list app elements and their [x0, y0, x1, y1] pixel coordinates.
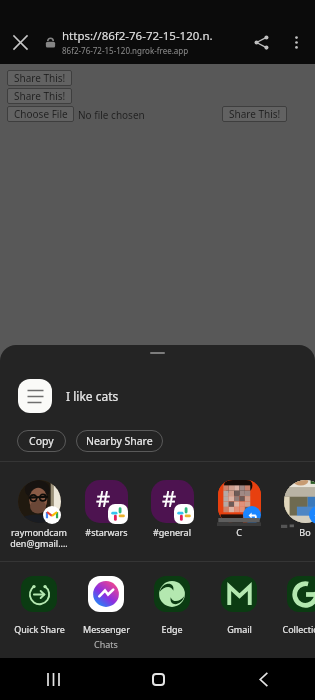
button[interactable]: # [140, 474, 204, 560]
button[interactable]: Bo [273, 474, 315, 560]
button[interactable]: Share This! [222, 106, 287, 122]
staticText: Quick Share [14, 623, 65, 635]
staticText: #starwars [85, 526, 128, 538]
button[interactable]: Choose File [7, 106, 74, 122]
staticText: Collections [282, 623, 315, 635]
staticText: Share This! [14, 71, 66, 85]
button[interactable]: Collections [273, 571, 315, 651]
button[interactable]: Gmail [207, 571, 271, 651]
staticText: No file chosen [78, 108, 145, 122]
button[interactable]: C [207, 474, 271, 560]
staticText: https://86f2-76-72-15-120.n… [62, 28, 212, 44]
staticText: Choose File [14, 107, 68, 121]
button[interactable]: Nearby Share [76, 430, 163, 452]
button[interactable]: Share This! [7, 88, 72, 104]
staticText: raymondcam den@gmail.... [10, 526, 68, 549]
staticText: Share This! [229, 107, 281, 121]
button[interactable]: Messenger [74, 571, 138, 651]
button[interactable]: Back [245, 661, 281, 697]
staticText: # [96, 483, 111, 513]
button[interactable]: More options [280, 26, 312, 58]
staticText: C [236, 526, 242, 538]
staticText: 86f2-76-72-15-120.ngrok-free.app [62, 45, 189, 56]
staticText: Edge [161, 623, 183, 635]
staticText: Copy [29, 434, 54, 448]
staticText: Messenger [83, 623, 130, 635]
button[interactable]: Share This! [7, 70, 72, 86]
staticText: Chats [94, 638, 118, 650]
button[interactable]: Recents [35, 661, 71, 697]
staticText: I like cats [66, 388, 119, 404]
button[interactable]: Close [4, 26, 36, 58]
button[interactable]: Edge [140, 571, 204, 651]
staticText: Gmail [227, 623, 252, 635]
button[interactable]: # [74, 474, 138, 560]
staticText: #general [153, 526, 191, 538]
button[interactable]: raymondcam den@gmail.... [7, 474, 71, 560]
button[interactable]: Home [140, 661, 176, 697]
staticText: Share This! [14, 89, 66, 103]
button[interactable]: Quick Share [7, 571, 71, 651]
staticText: # [162, 483, 177, 513]
button[interactable]: Share [245, 26, 277, 58]
staticText: Nearby Share [86, 434, 153, 448]
button[interactable]: Copy [17, 430, 66, 452]
staticText: Bo [299, 526, 311, 538]
